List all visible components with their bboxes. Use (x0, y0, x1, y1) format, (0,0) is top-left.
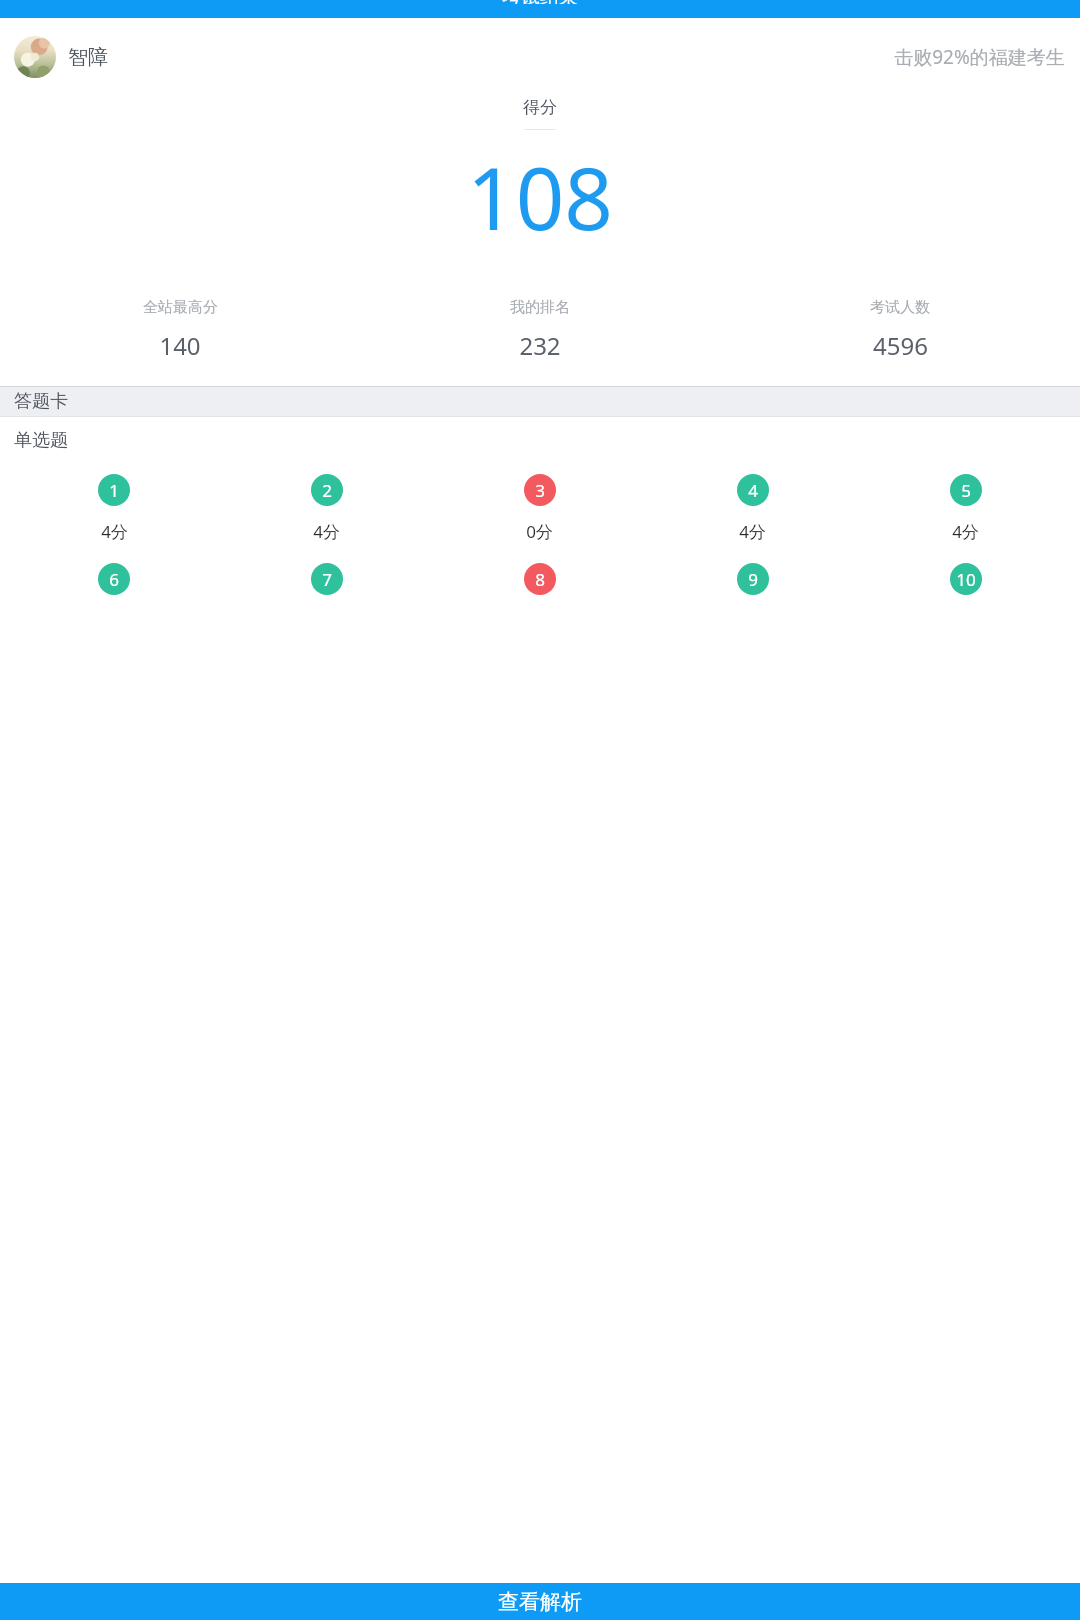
staticText: 4分 (952, 520, 979, 543)
button[interactable]: 10 (859, 563, 1072, 595)
staticText: 108 (467, 139, 613, 255)
staticText: 0分 (526, 520, 553, 543)
button[interactable]: 1 (8, 474, 220, 543)
staticText: 4分 (101, 520, 128, 543)
button[interactable]: 2 (220, 474, 433, 543)
staticText: 智障 (68, 45, 108, 70)
staticText: 单选题 (14, 429, 68, 452)
staticText: 查看解析 (498, 1589, 582, 1615)
staticText: 考试结果 (502, 0, 578, 4)
staticText: 4596 (873, 329, 928, 362)
button[interactable]: 6 (8, 563, 220, 595)
button[interactable]: 全站最高分 (0, 298, 360, 362)
button[interactable]: 4 (646, 474, 859, 543)
staticText: 击败92%的福建考生 (894, 44, 1065, 70)
staticText: 2 (322, 479, 332, 502)
staticText: 7 (322, 568, 332, 591)
button[interactable]: 9 (646, 563, 859, 595)
staticText: 4分 (313, 520, 340, 543)
staticText: 4分 (739, 520, 766, 543)
staticText: 4 (748, 479, 758, 502)
staticText: 10 (956, 568, 976, 591)
staticText: 3 (535, 479, 545, 502)
staticText: 全站最高分 (143, 298, 218, 317)
staticText: 考试人数 (870, 298, 930, 317)
staticText: 6 (109, 568, 119, 591)
button[interactable]: 答题卡 (0, 387, 1080, 416)
button[interactable]: 8 (433, 563, 646, 595)
staticText: 1 (109, 479, 119, 502)
staticText: 232 (519, 329, 561, 362)
button[interactable]: 7 (220, 563, 433, 595)
button[interactable]: 考试人数 (720, 298, 1080, 362)
button[interactable]: 查看解析 (0, 1583, 1080, 1620)
button[interactable]: 3 (433, 474, 646, 543)
button[interactable]: 我的排名 (360, 298, 720, 362)
button[interactable]: 5 (859, 474, 1072, 543)
staticText: 得分 (523, 97, 557, 118)
staticText: 140 (159, 329, 201, 362)
staticText: 答题卡 (14, 390, 68, 413)
button[interactable]: 智障 (14, 36, 108, 78)
staticText: 我的排名 (510, 298, 570, 317)
staticText: 5 (961, 479, 971, 502)
staticText: 8 (535, 568, 545, 591)
staticText: 9 (748, 568, 758, 591)
